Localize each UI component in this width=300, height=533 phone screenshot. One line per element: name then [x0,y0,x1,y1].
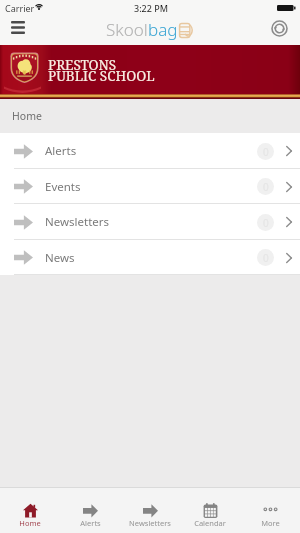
staticText: 0 [263,251,269,265]
staticText: Events [45,179,81,195]
button[interactable]: Newsletters [120,488,180,533]
button[interactable]: Refresh [263,14,295,43]
staticText: 0 [263,145,269,159]
staticText: Calendar [194,518,226,526]
button[interactable]: More [240,488,300,533]
button[interactable]: Menu [2,13,34,42]
button[interactable]: Home [0,488,60,533]
staticText: Alerts [45,143,77,159]
staticText: Skool [106,18,148,41]
staticText: News [45,250,75,266]
button[interactable]: Events [0,169,300,204]
staticText: Alerts [80,518,101,526]
staticText: More [261,518,280,526]
staticText: 0 [263,180,269,194]
button[interactable]: Newsletters [0,204,300,240]
staticText: Newsletters [129,518,171,526]
staticText: 0 [263,216,269,230]
button[interactable]: News [0,240,300,275]
button[interactable]: Calendar [180,488,240,533]
button[interactable]: Alerts [60,488,120,533]
staticText: bag [148,18,178,41]
staticText: Home [19,518,41,526]
staticText: PUBLIC SCHOOL [48,67,155,85]
button[interactable]: Alerts [0,133,300,169]
staticText: Home [12,109,42,123]
staticText: Newsletters [45,214,110,230]
staticText: Carrier [5,2,35,14]
staticText: PRESTONS [48,56,117,74]
staticText: 3:22 PM [134,2,168,14]
